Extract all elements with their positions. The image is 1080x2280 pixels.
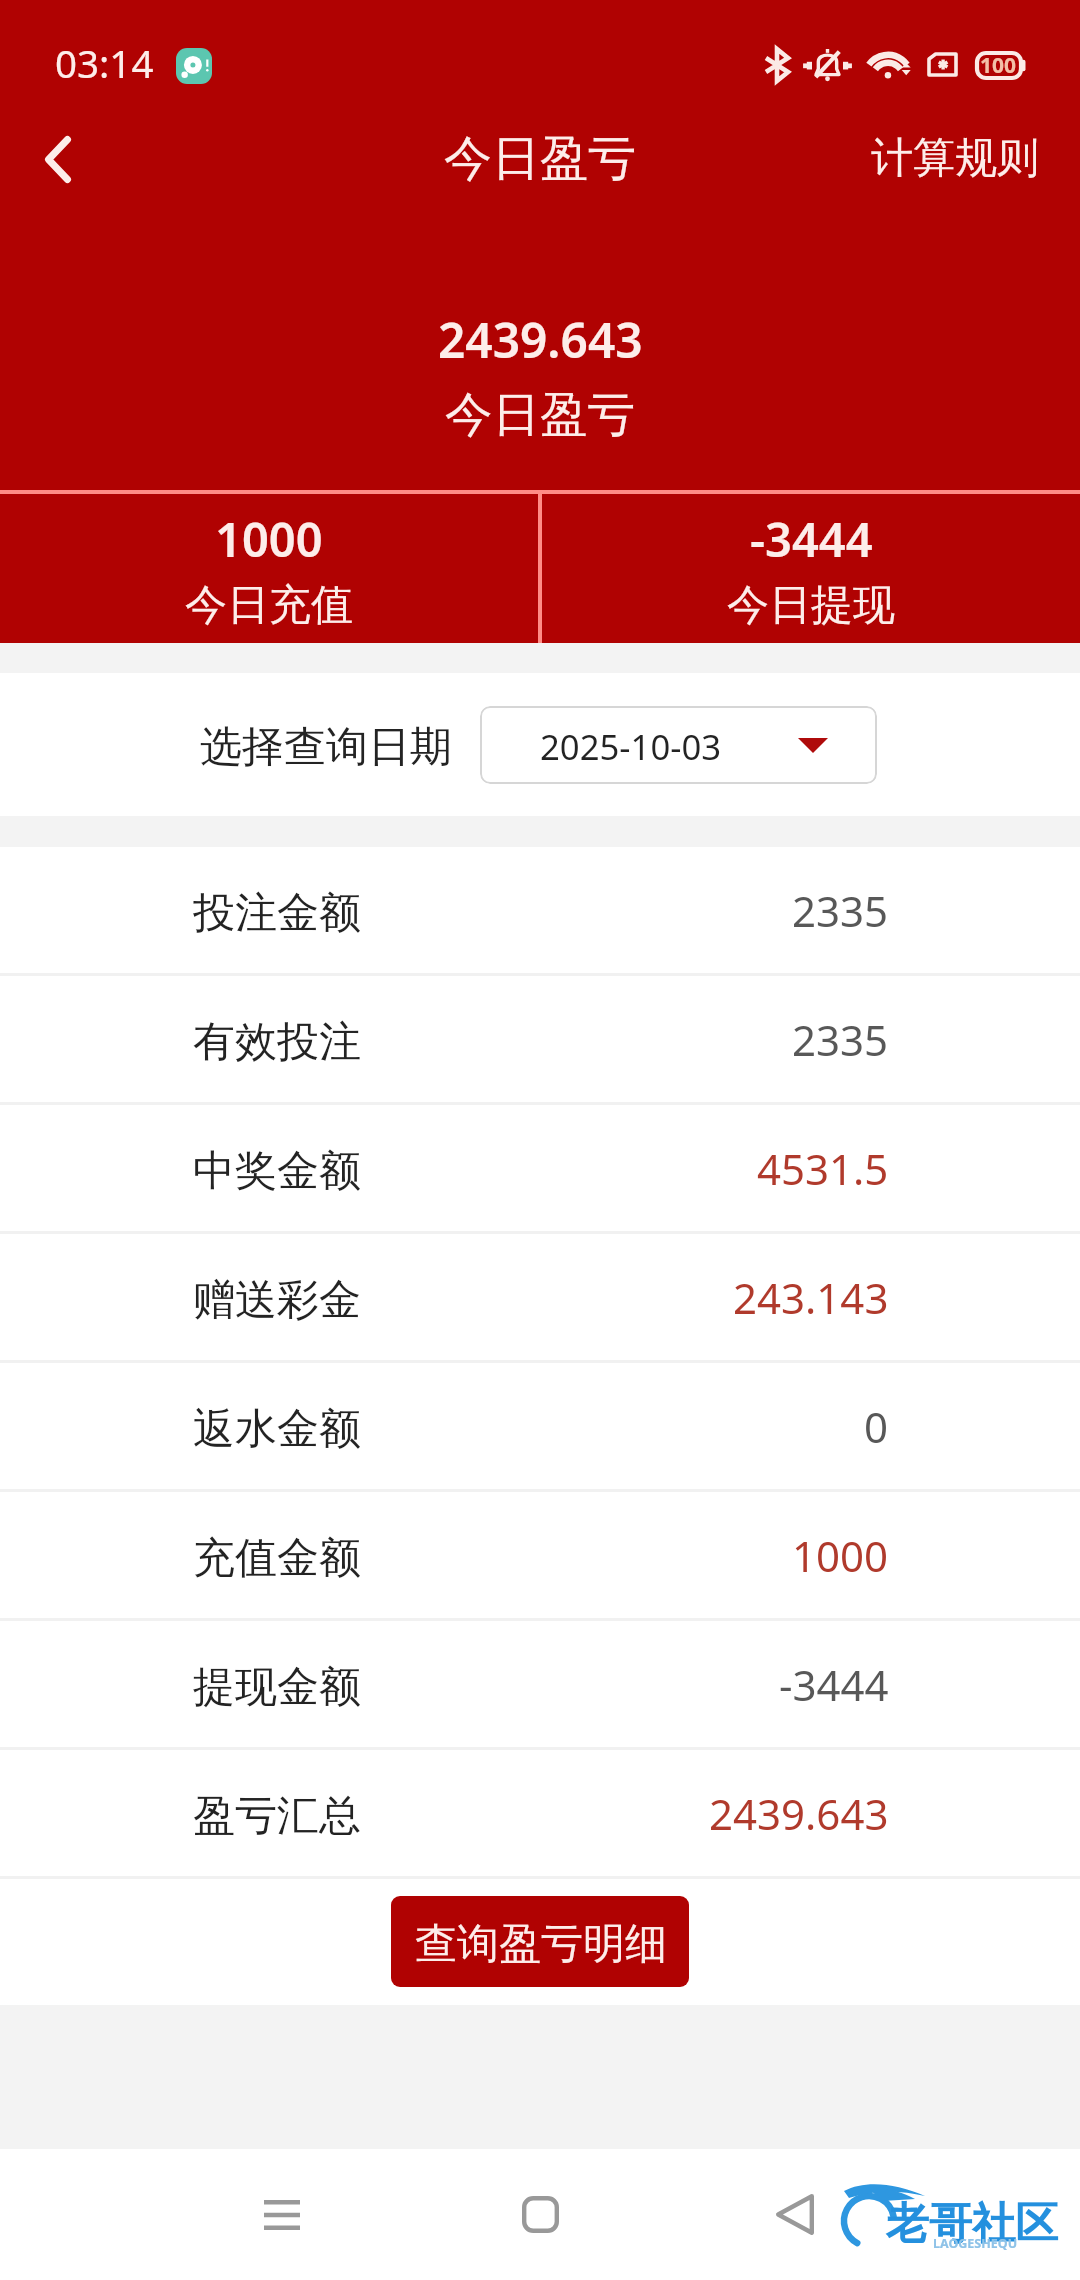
button[interactable]: -3444 [542,494,1080,644]
staticText: 4531.5 [757,1140,889,1197]
button[interactable]: 2025-10-03 [480,706,877,784]
button[interactable]: Back [735,2149,855,2280]
staticText: -3444 [779,1656,889,1713]
staticText: LAOGESHEQU [933,2235,1018,2252]
staticText: 1000 [792,1527,889,1584]
button[interactable]: 返水金额 [0,1363,1080,1489]
staticText: 提现金额 [193,1661,361,1714]
button[interactable]: 赠送彩金 [0,1234,1080,1360]
button[interactable]: Home [480,2149,600,2280]
staticText: 中奖金额 [193,1145,361,1198]
staticText: 243.143 [733,1269,889,1326]
staticText: 今日盈亏 [445,385,635,445]
button[interactable]: 有效投注 [0,976,1080,1102]
staticText: 2025-10-03 [540,723,722,770]
staticText: 有效投注 [193,1016,361,1069]
staticText: 2439.643 [709,1785,889,1842]
staticText: 今日提现 [727,579,895,632]
staticText: 今日充值 [185,579,353,632]
staticText: 查询盈亏明细 [415,1918,667,1971]
button[interactable]: 提现金额 [0,1621,1080,1747]
staticText: -3444 [750,507,873,571]
staticText: 0 [864,1398,889,1455]
staticText: 老哥社区 [886,2197,1058,2251]
staticText: 2439.643 [438,307,643,372]
staticText: 选择查询日期 [200,721,452,774]
staticText: 盈亏汇总 [193,1790,361,1843]
button[interactable]: Back [8,109,108,209]
staticText: 100 [980,51,1017,80]
button[interactable]: Recents [222,2149,342,2280]
staticText: 2335 [792,1011,889,1068]
staticText: 计算规则 [871,132,1039,185]
staticText: 03:14 [55,37,154,89]
staticText: 2335 [792,882,889,939]
button[interactable]: 查询盈亏明细 [391,1896,689,1987]
button[interactable]: 充值金额 [0,1492,1080,1618]
staticText: 赠送彩金 [193,1274,361,1327]
button[interactable]: 盈亏汇总 [0,1750,1080,1876]
staticText: 返水金额 [193,1403,361,1456]
button[interactable]: 投注金额 [0,847,1080,973]
button[interactable]: 中奖金额 [0,1105,1080,1231]
button[interactable]: 计算规则 [871,132,1039,185]
staticText: 充值金额 [193,1532,361,1585]
button[interactable]: 1000 [0,494,538,644]
staticText: 1000 [215,507,323,571]
staticText: 今日盈亏 [444,129,636,189]
staticText: 投注金额 [193,887,361,940]
